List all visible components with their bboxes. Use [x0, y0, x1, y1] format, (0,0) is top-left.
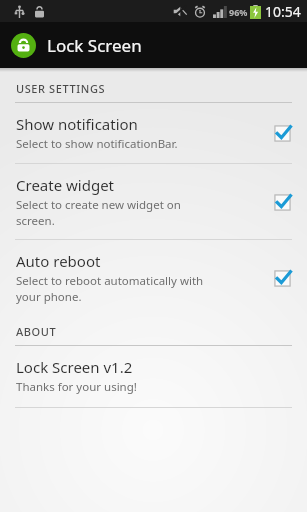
button[interactable]: Enabled: [271, 191, 293, 213]
staticText: Auto reboot: [16, 251, 101, 271]
button[interactable]: Create widget: [0, 164, 307, 239]
button[interactable]: Enabled: [271, 122, 293, 144]
staticText: Select to show notificationBar.: [16, 136, 178, 152]
staticText: 96%: [229, 6, 248, 18]
staticText: Select to reboot automatically with your…: [16, 273, 204, 304]
staticText: Lock Screen: [47, 34, 142, 57]
staticText: Select to create new widget on screen.: [16, 197, 181, 228]
staticText: ABOUT: [16, 324, 57, 339]
staticText: Thanks for your using!: [16, 379, 137, 395]
staticText: USER SETTINGS: [16, 81, 106, 96]
button[interactable]: Enabled: [271, 267, 293, 289]
staticText: Create widget: [16, 175, 115, 195]
staticText: Show notification: [16, 114, 138, 134]
button[interactable]: Auto reboot: [0, 240, 307, 315]
button[interactable]: Lock Screen v1.2: [0, 346, 307, 407]
staticText: Lock Screen v1.2: [16, 357, 133, 377]
button[interactable]: Show notification: [0, 103, 307, 163]
staticText: 10:54: [265, 2, 301, 21]
